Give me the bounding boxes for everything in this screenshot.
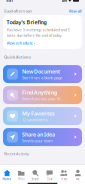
staticText: You have 3 meetings scheduled and 5 task… (6, 27, 69, 38)
staticText: New Document (22, 68, 60, 75)
staticText: Home (3, 177, 12, 181)
staticText: Start from a blank page (22, 75, 62, 80)
staticText: Quick Actions (4, 54, 31, 60)
staticText: My Favorites (22, 110, 55, 117)
button[interactable]: Home (0, 166, 14, 181)
staticText: Chat (47, 177, 53, 181)
button[interactable]: Search (28, 166, 42, 181)
button[interactable]: Share an Idea (3, 128, 82, 146)
button[interactable]: My Favorites (3, 107, 82, 125)
button[interactable]: Team (57, 166, 71, 181)
staticText: View all (68, 8, 81, 13)
button[interactable]: New Document (3, 65, 82, 83)
staticText: Recent Activity (4, 151, 29, 156)
staticText: View schedule › (6, 40, 34, 45)
staticText: Search (31, 177, 39, 181)
staticText: Team (61, 177, 67, 181)
staticText: Me (76, 177, 80, 181)
button[interactable]: View schedule › (6, 40, 34, 45)
staticText: Files (18, 177, 24, 181)
button[interactable]: View all (68, 8, 81, 13)
button[interactable]: Chat (42, 166, 57, 181)
button[interactable]: Find Anything (3, 86, 82, 104)
button[interactable]: Me (71, 166, 85, 181)
staticText: Today's Briefing (6, 18, 46, 26)
staticText: 9:41 (6, 0, 13, 3)
staticText: Search across your files (22, 96, 63, 101)
staticText: Find Anything (22, 89, 57, 96)
staticText: Share an Idea (22, 131, 55, 138)
button[interactable]: Files (14, 166, 28, 181)
staticText: 12 saved items (22, 117, 48, 122)
staticText: Good afternoon (3, 8, 32, 13)
staticText: Send to your team (22, 138, 53, 143)
